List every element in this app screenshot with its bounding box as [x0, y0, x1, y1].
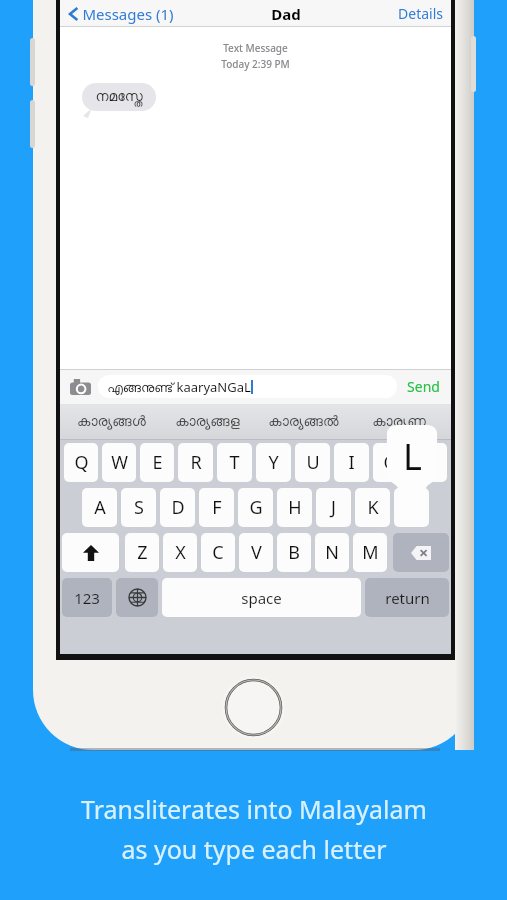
button[interactable]: കാര്യങ്ങൽ [255, 404, 351, 440]
button[interactable]: എങ്ങനുണ്ട് kaaryaNGaL [98, 375, 397, 398]
button[interactable]: X [163, 533, 197, 572]
button[interactable]: കാര്യങ്ങൾ [64, 404, 159, 440]
button[interactable]: Messages (1) [66, 4, 176, 24]
staticText: എങ്ങനുണ്ട് kaaryaNGaL [107, 378, 251, 396]
button[interactable]: C [201, 533, 235, 572]
button[interactable]: കാര്യണ [351, 404, 447, 440]
button[interactable]: U [295, 443, 330, 482]
staticText: S [134, 495, 144, 520]
button[interactable]: V [239, 533, 273, 572]
button[interactable]: Home [222, 676, 285, 739]
staticText: K [367, 495, 379, 520]
staticText: F [212, 495, 222, 520]
staticText: U [306, 450, 320, 475]
button[interactable]: D [160, 488, 195, 527]
staticText: D [171, 495, 185, 520]
staticText: 123 [74, 588, 100, 608]
staticText: B [288, 540, 300, 565]
staticText: J [331, 495, 336, 520]
staticText: M [362, 540, 379, 565]
button[interactable]: I [334, 443, 369, 482]
button[interactable]: space [162, 578, 361, 617]
staticText: space [241, 588, 282, 608]
staticText: X [175, 540, 186, 565]
button[interactable]: F [199, 488, 234, 527]
staticText: as you type each letter [121, 832, 387, 866]
button[interactable]: H [277, 488, 312, 527]
staticText: W [111, 450, 128, 475]
staticText: കാര്യങ്ങൾ [77, 415, 146, 429]
button[interactable]: A [82, 488, 117, 527]
button[interactable]: നമസ്തേ [82, 83, 156, 111]
button[interactable]: K [355, 488, 390, 527]
staticText: E [152, 450, 163, 475]
staticText: നമസ്തേ [95, 90, 143, 104]
staticText: N [325, 540, 339, 565]
staticText: H [288, 495, 302, 520]
staticText: C [212, 540, 224, 565]
button[interactable]: S [121, 488, 156, 527]
button[interactable]: B [277, 533, 311, 572]
button[interactable]: N [315, 533, 349, 572]
staticText: R [190, 450, 202, 475]
button[interactable]: L [394, 488, 429, 527]
staticText: V [251, 540, 262, 565]
button[interactable]: Y [256, 443, 291, 482]
button[interactable]: Q [64, 443, 98, 482]
staticText: T [229, 450, 240, 475]
button[interactable]: T [217, 443, 252, 482]
button[interactable]: Details [396, 2, 445, 25]
staticText: Z [137, 540, 148, 565]
staticText: Messages (1) [82, 4, 174, 24]
staticText: കാര്യണ [372, 415, 426, 429]
button[interactable]: P [412, 443, 447, 482]
staticText: Today 2:39 PM [60, 57, 451, 71]
staticText: Y [268, 450, 279, 475]
staticText: I [348, 450, 355, 475]
button[interactable]: Z [125, 533, 159, 572]
button[interactable]: O [373, 443, 408, 482]
button[interactable]: G [238, 488, 273, 527]
button[interactable]: Send [404, 377, 443, 396]
button[interactable]: Change keyboard [116, 578, 158, 617]
button[interactable]: E [140, 443, 174, 482]
staticText: Transliterates into Malayalam [81, 792, 427, 826]
button[interactable]: R [178, 443, 213, 482]
staticText: return [385, 588, 430, 608]
staticText: Dad [271, 4, 301, 24]
button[interactable]: J [316, 488, 351, 527]
staticText: G [249, 495, 263, 520]
button[interactable]: M [353, 533, 387, 572]
button[interactable]: 123 [62, 578, 112, 617]
staticText: A [94, 495, 106, 520]
staticText: കാര്യങ്ങള [175, 415, 240, 429]
button[interactable]: return [365, 578, 449, 617]
button[interactable]: Backspace [393, 533, 449, 572]
button[interactable] [62, 533, 119, 572]
staticText: O [383, 450, 398, 475]
staticText: Text Message [60, 41, 451, 55]
button[interactable]: Camera [68, 375, 92, 399]
staticText: L [403, 432, 422, 481]
button[interactable]: കാര്യങ്ങള [159, 404, 255, 440]
staticText: Q [74, 450, 89, 475]
button[interactable]: W [102, 443, 136, 482]
staticText: കാര്യങ്ങൽ [268, 415, 339, 429]
